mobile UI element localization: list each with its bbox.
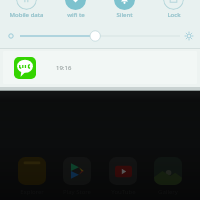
button[interactable]: wifi te bbox=[51, 0, 100, 29]
staticText: Mobile data bbox=[9, 11, 44, 19]
button[interactable]: Silent bbox=[100, 0, 149, 29]
button[interactable]: Mobile data bbox=[2, 0, 51, 29]
staticText: wifi te bbox=[67, 11, 85, 19]
button[interactable]: Explorer bbox=[10, 157, 54, 198]
button[interactable]: 19:16 bbox=[3, 51, 197, 84]
button[interactable]: Lock bbox=[149, 0, 198, 29]
button[interactable]: Auto brightness bbox=[184, 31, 194, 41]
button[interactable]: YouTube bbox=[101, 157, 145, 198]
staticText: 19:16 bbox=[56, 64, 72, 72]
staticText: Silent bbox=[116, 11, 133, 19]
button[interactable]: Gallery bbox=[146, 157, 190, 198]
staticText: Lock bbox=[167, 11, 181, 19]
button[interactable]: Play Store bbox=[55, 157, 99, 198]
button[interactable]: Auto brightness bbox=[6, 29, 194, 43]
